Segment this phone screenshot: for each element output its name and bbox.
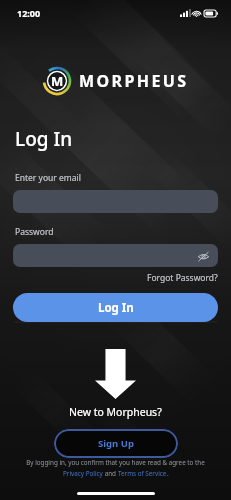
button[interactable]: Log In — [13, 293, 218, 322]
staticText: M — [51, 72, 64, 90]
button[interactable]: Sign Up — [54, 429, 178, 458]
staticText: and — [103, 469, 118, 478]
staticText: Password — [15, 226, 54, 238]
button[interactable] — [13, 190, 218, 213]
button[interactable]: Privacy Policy — [63, 469, 103, 478]
staticText: By logging in, you confirm that you have… — [26, 458, 205, 467]
staticText: Forgot Password? — [147, 272, 218, 284]
button[interactable]: Show password — [195, 248, 211, 264]
staticText: Enter your email — [15, 172, 81, 184]
button[interactable]: Show password — [13, 244, 218, 267]
staticText: Log In — [15, 126, 73, 152]
other: Scroll down — [95, 349, 136, 399]
staticText: Sign Up — [98, 437, 134, 450]
button[interactable]: Terms of Service — [118, 469, 167, 478]
staticText: 12:00 — [17, 7, 41, 19]
button[interactable]: Forgot Password? — [147, 272, 218, 284]
staticText: MORPHEUS — [79, 70, 189, 92]
staticText: New to Morpheus? — [69, 405, 162, 419]
staticText: . — [167, 469, 169, 478]
staticText: Privacy Policy — [63, 469, 103, 478]
staticText: Terms of Service — [118, 469, 167, 478]
staticText: Log In — [98, 300, 134, 316]
